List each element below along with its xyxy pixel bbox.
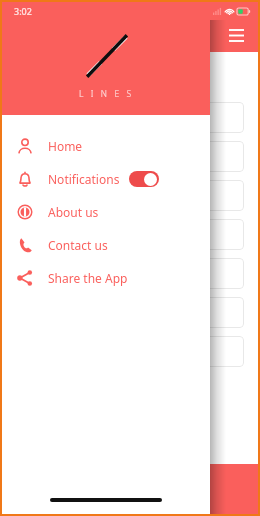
staticText: L I N E S	[79, 88, 134, 100]
staticText: 3:02	[14, 5, 32, 17]
staticText: Home	[48, 138, 83, 154]
button[interactable]: Phone	[16, 336, 244, 367]
staticText: Share the App	[48, 270, 128, 286]
staticText: Date	[26, 149, 51, 164]
button[interactable]: Address	[16, 180, 244, 211]
button[interactable]: Name	[16, 102, 244, 133]
button[interactable]: About us	[2, 195, 210, 228]
staticText: Notifications	[48, 171, 120, 187]
staticText: Name	[26, 110, 58, 125]
button[interactable]: Share the App	[2, 261, 210, 294]
button[interactable]: Open navigation drawer	[223, 22, 249, 48]
button[interactable]: Zip	[16, 297, 244, 328]
button[interactable]: Notifications	[2, 162, 210, 195]
staticText: Contact us	[48, 237, 108, 253]
staticText: State	[26, 266, 53, 281]
button[interactable]: Notifications toggle, on	[129, 171, 159, 187]
staticText: About us	[48, 204, 99, 220]
button[interactable]: Date	[16, 141, 244, 172]
button[interactable]: Contact us	[2, 228, 210, 261]
button[interactable]: State	[16, 258, 244, 289]
button[interactable]: Home	[2, 129, 210, 162]
button[interactable]: City	[16, 219, 244, 250]
